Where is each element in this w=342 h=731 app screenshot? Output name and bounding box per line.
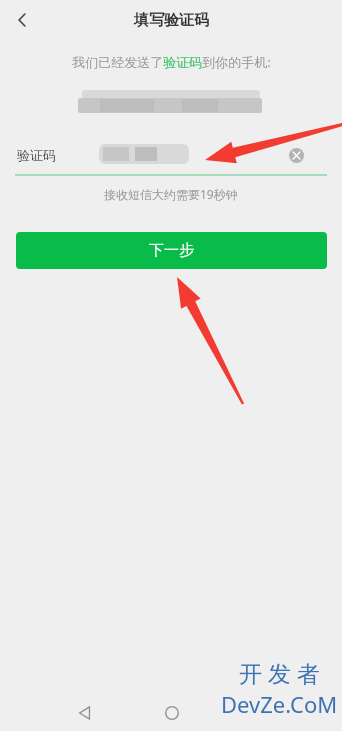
staticText: 我们已经发送了验证码到你的手机: [72, 53, 271, 71]
staticText: 验证码 [17, 147, 56, 163]
button[interactable]: Back [0, 0, 44, 40]
button[interactable]: 验证码 [0, 136, 342, 174]
staticText: 开 发 者 [239, 657, 320, 688]
button[interactable]: Back [68, 696, 102, 730]
staticText: 下一步 [149, 241, 194, 260]
button[interactable]: Home [155, 696, 189, 730]
staticText: 接收短信大约需要19秒钟 [104, 186, 238, 202]
button[interactable]: 下一步 [16, 232, 327, 269]
button[interactable]: Clear [284, 143, 308, 167]
staticText: 填写验证码 [134, 11, 209, 30]
staticText: DevZe.CoM [221, 689, 338, 719]
